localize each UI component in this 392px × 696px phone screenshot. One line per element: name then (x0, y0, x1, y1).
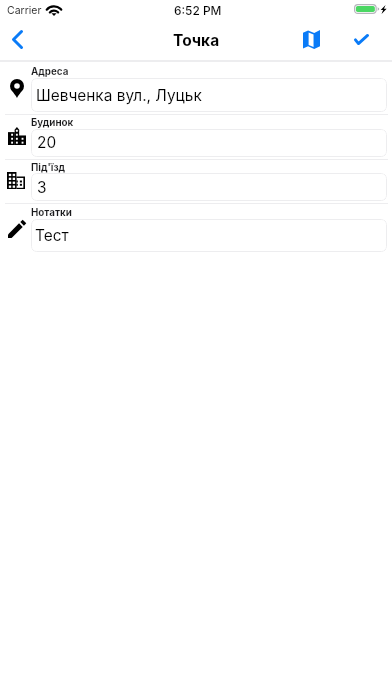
staticText: Carrier (7, 4, 42, 17)
button[interactable] (0, 64, 392, 114)
button[interactable]: Map (289, 18, 334, 62)
staticText: Будинок (31, 117, 74, 129)
button[interactable]: Done (338, 18, 386, 62)
button[interactable] (0, 205, 392, 254)
staticText: 6:52 PM (174, 3, 222, 17)
staticText: Шевченка вул., Луцьк (36, 86, 202, 105)
button[interactable] (0, 159, 392, 203)
staticText: Нотатки (31, 207, 72, 219)
staticText: Адреса (31, 66, 69, 78)
staticText: Під'їзд (31, 162, 66, 174)
staticText: Тест (35, 226, 69, 245)
button[interactable]: Back (0, 18, 40, 62)
button[interactable] (0, 115, 392, 159)
staticText: Точка (173, 31, 220, 50)
staticText: 20 (37, 133, 57, 152)
staticText: 3 (37, 178, 47, 197)
